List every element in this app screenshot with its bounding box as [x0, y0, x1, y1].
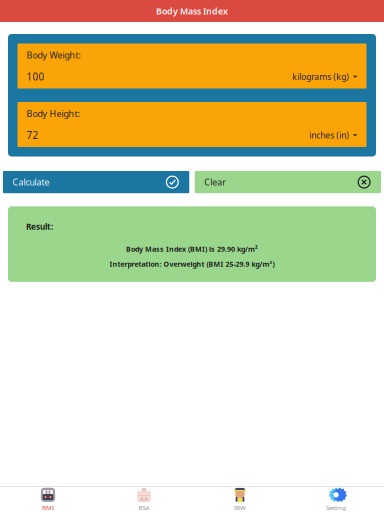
staticText: Body Height: [26, 107, 79, 120]
button[interactable]: BMI [0, 487, 96, 512]
staticText: inches (in) [309, 129, 349, 141]
button[interactable]: IBW [192, 487, 288, 512]
staticText: Body Mass Index [156, 5, 228, 17]
staticText: BMI [42, 503, 54, 512]
staticText: Calculate [12, 176, 49, 188]
staticText: IBW [234, 503, 246, 512]
button[interactable]: BSA [96, 487, 192, 512]
staticText: Body Mass Index (BMI) is 29.90 kg/m² [126, 244, 258, 254]
button[interactable]: inches (in) [309, 129, 357, 141]
button[interactable]: Clear [195, 171, 381, 193]
staticText: 72 [26, 129, 38, 142]
staticText: Body Weight: [26, 49, 80, 61]
staticText: kilograms (kg) [292, 71, 349, 83]
staticText: Interpretation: Overweight (BMI 25-29.9 … [109, 259, 274, 269]
button[interactable]: Calculate [3, 171, 189, 193]
staticText: Setting [326, 503, 346, 512]
staticText: Clear [204, 176, 226, 188]
staticText: BSA [138, 503, 149, 512]
staticText: Result: [26, 221, 53, 232]
button[interactable]: Setting [288, 487, 384, 512]
button[interactable]: kilograms (kg) [292, 71, 357, 83]
staticText: 100 [26, 70, 44, 83]
